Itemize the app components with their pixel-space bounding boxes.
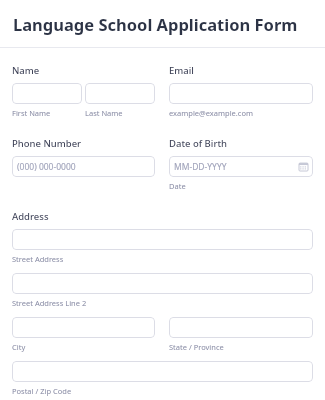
staticText: Address [12, 210, 49, 223]
button[interactable]: Last Name [85, 83, 155, 104]
staticText: Name [12, 64, 40, 77]
button[interactable]: State / Province [169, 317, 313, 338]
staticText: Last Name [85, 108, 123, 118]
button[interactable]: First Name [12, 83, 82, 104]
staticText: Language School Application Form [13, 13, 298, 35]
button[interactable]: Email [169, 83, 313, 104]
button[interactable]: Date of Birth [169, 156, 313, 177]
staticText: Phone Number [12, 137, 82, 150]
button[interactable]: Address [12, 229, 313, 250]
staticText: Email [169, 64, 194, 77]
staticText: City [12, 342, 26, 352]
staticText: Postal / Zip Code [12, 386, 72, 396]
button[interactable]: Street Address Line 2 [12, 273, 313, 294]
staticText: Street Address [12, 254, 64, 264]
staticText: Date of Birth [169, 137, 227, 150]
button[interactable]: City [12, 317, 155, 338]
staticText: MM-DD-YYYY [174, 161, 227, 173]
staticText: Date [169, 181, 186, 191]
button[interactable]: Phone Number [12, 156, 155, 177]
staticText: State / Province [169, 342, 224, 352]
button[interactable]: Postal / Zip Code [12, 361, 313, 382]
staticText: Street Address Line 2 [12, 298, 87, 308]
staticText: example@example.com [169, 108, 253, 118]
staticText: (000) 000-0000 [17, 161, 76, 173]
staticText: First Name [12, 108, 51, 118]
